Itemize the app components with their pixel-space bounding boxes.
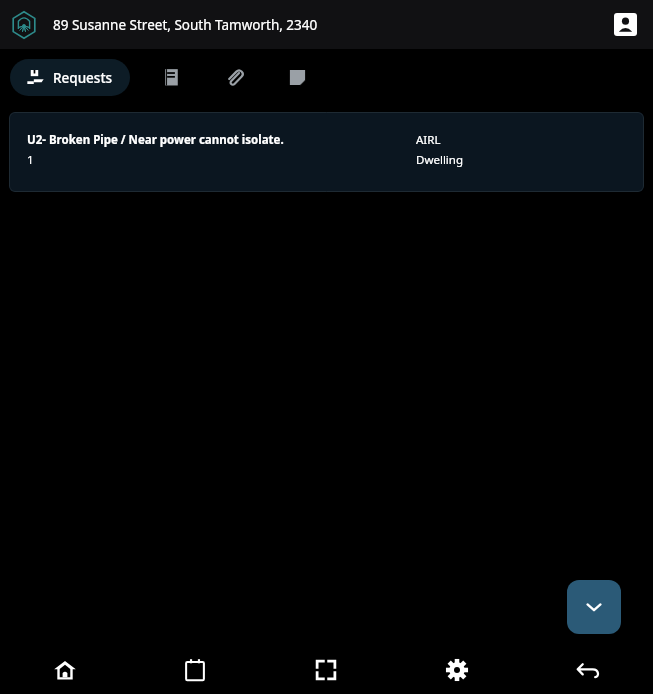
button[interactable]: U2- Broken Pipe / Near power cannot isol… (9, 112, 644, 192)
staticText: 89 Susanne Street, South Tamworth, 2340 (53, 16, 318, 34)
button[interactable]: Calendar (130, 645, 260, 694)
button[interactable]: Home (0, 645, 130, 694)
button[interactable]: App logo (9, 10, 39, 40)
button[interactable]: Settings (391, 645, 522, 694)
staticText: AIRL (416, 132, 441, 148)
button[interactable]: Expand (567, 580, 621, 634)
staticText: Requests (53, 69, 113, 87)
staticText: U2- Broken Pipe / Near power cannot isol… (27, 132, 284, 148)
button[interactable]: Profile (612, 11, 639, 38)
button[interactable]: Scan (260, 645, 391, 694)
staticText: 1 (27, 152, 34, 168)
button[interactable]: Back (522, 645, 653, 694)
button[interactable]: Attachments (217, 60, 251, 94)
button[interactable]: Notes (280, 60, 314, 94)
staticText: Dwelling (416, 152, 464, 168)
button[interactable]: Requests (10, 59, 130, 96)
button[interactable]: Documents (154, 60, 188, 94)
